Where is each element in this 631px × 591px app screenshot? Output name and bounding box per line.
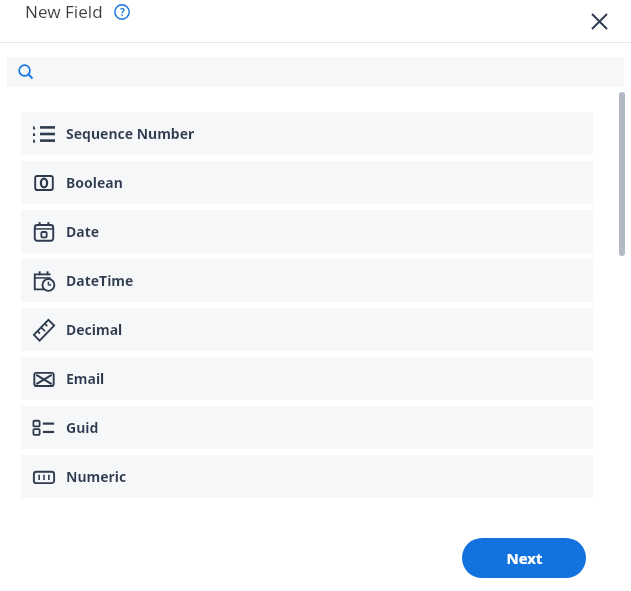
button[interactable]: Help [111, 1, 133, 23]
staticText: Sequence Number [66, 124, 195, 143]
button[interactable]: Sequence Number [21, 112, 593, 155]
staticText: Date [66, 222, 100, 241]
button[interactable]: DateTime [21, 259, 593, 302]
staticText: Boolean [66, 173, 123, 192]
button[interactable]: Decimal [21, 308, 593, 351]
button[interactable]: Next [462, 538, 586, 578]
button[interactable]: Close [584, 6, 614, 36]
staticText: Email [66, 369, 105, 388]
button[interactable]: Email [21, 357, 593, 400]
button[interactable]: Boolean [21, 161, 593, 204]
button[interactable]: Date [21, 210, 593, 253]
staticText: Decimal [66, 320, 123, 339]
button[interactable]: Search [7, 57, 624, 87]
staticText: Numeric [66, 467, 127, 486]
staticText: New Field [25, 0, 103, 23]
staticText: Guid [66, 418, 99, 437]
button[interactable]: Guid [21, 406, 593, 449]
staticText: ? [120, 5, 125, 19]
staticText: DateTime [66, 271, 134, 290]
button[interactable]: Numeric [21, 455, 593, 498]
staticText: Next [506, 548, 543, 568]
other: Search [17, 63, 35, 81]
